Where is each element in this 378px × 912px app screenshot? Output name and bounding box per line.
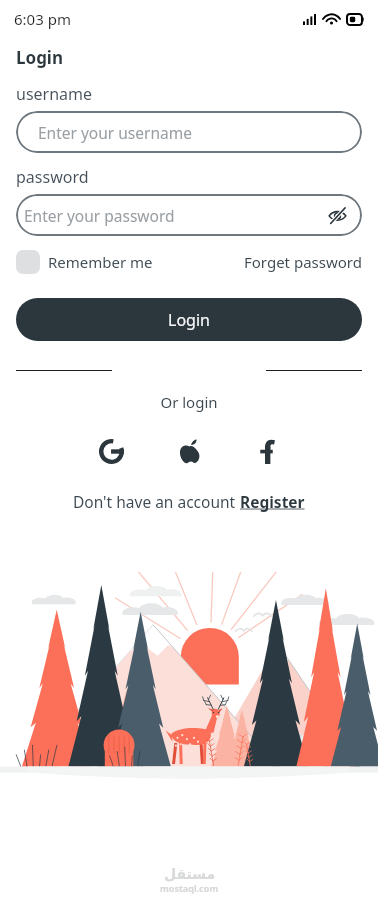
staticText: Login <box>16 46 64 69</box>
button[interactable]: Register <box>240 491 305 512</box>
staticText: Register <box>240 491 305 512</box>
staticText: Don't have an account <box>73 491 240 512</box>
staticText: username <box>16 83 93 105</box>
button[interactable]: Login <box>16 298 362 341</box>
button[interactable]: Show password <box>324 202 350 228</box>
button[interactable]: Forget password <box>244 252 362 272</box>
button[interactable]: Sign in with Apple <box>167 429 211 473</box>
staticText: Login <box>168 309 210 331</box>
staticText: Remember me <box>48 252 153 272</box>
button[interactable]: Sign in with Google <box>89 429 133 473</box>
button[interactable]: Sign in with Facebook <box>245 429 289 473</box>
button[interactable]: Enter your password <box>16 194 362 236</box>
staticText: Forget password <box>244 252 362 272</box>
staticText: mostaql.com <box>160 882 219 894</box>
staticText: Enter your username <box>38 122 192 143</box>
button[interactable]: Enter your username <box>16 111 362 153</box>
staticText: Enter your password <box>24 205 175 226</box>
button[interactable]: Remember me <box>16 250 153 274</box>
staticText: مستقل <box>164 866 216 882</box>
staticText: Or login <box>0 392 378 412</box>
staticText: 6:03 pm <box>14 9 71 29</box>
staticText: password <box>16 166 89 188</box>
